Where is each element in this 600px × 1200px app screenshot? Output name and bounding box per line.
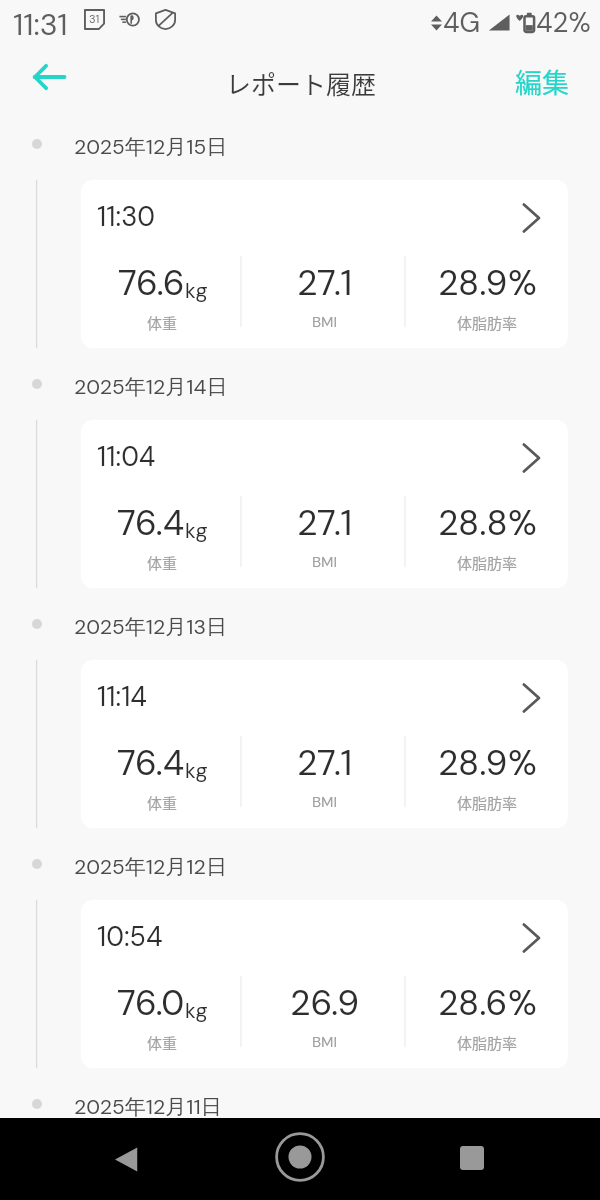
staticText: 28.9 <box>438 260 508 306</box>
staticText: 10:54 <box>97 919 163 954</box>
staticText: 76.6 <box>118 260 185 306</box>
staticText: 体重 <box>147 312 178 334</box>
button[interactable]: Recent apps <box>442 1128 502 1188</box>
staticText: 28.6 <box>438 980 508 1026</box>
staticText: 2025年12月15日 <box>74 133 228 160</box>
staticText: % <box>508 260 537 306</box>
staticText: 76.4 <box>117 500 185 546</box>
button[interactable]: 11:04 <box>81 420 568 588</box>
staticText: 11:30 <box>97 199 155 234</box>
staticText: 体重 <box>147 792 178 814</box>
staticText: BMI <box>312 1032 338 1052</box>
button[interactable]: 11:30 <box>81 180 568 348</box>
staticText: 27.1 <box>297 740 353 786</box>
staticText: BMI <box>312 312 338 332</box>
other: Open detail <box>516 684 544 712</box>
staticText: 2025年12月12日 <box>74 853 227 880</box>
button[interactable]: 10:54 <box>81 900 568 1068</box>
staticText: 体脂肪率 <box>457 1032 518 1054</box>
staticText: 27.1 <box>297 260 353 306</box>
staticText: 28.8 <box>438 500 508 546</box>
staticText: 31 <box>89 12 100 26</box>
staticText: BMI <box>312 792 338 812</box>
staticText: 76.0 <box>117 980 185 1026</box>
staticText: 26.9 <box>290 980 360 1026</box>
button[interactable]: Back <box>22 50 76 104</box>
other: Open detail <box>516 924 544 952</box>
button[interactable]: 11:14 <box>81 660 568 828</box>
staticText: 4G <box>443 5 481 40</box>
staticText: 編集 <box>515 62 569 101</box>
staticText: kg <box>185 757 208 784</box>
staticText: % <box>508 500 537 546</box>
staticText: 2025年12月14日 <box>74 373 228 400</box>
staticText: % <box>508 740 537 786</box>
button[interactable]: 編集 <box>500 54 584 109</box>
staticText: 2025年12月11日 <box>74 1093 222 1120</box>
staticText: BMI <box>312 552 338 572</box>
staticText: 体脂肪率 <box>457 312 518 334</box>
staticText: kg <box>185 517 208 544</box>
button[interactable]: Back <box>96 1129 156 1189</box>
button[interactable]: Home <box>270 1127 330 1187</box>
staticText: kg <box>185 997 208 1024</box>
staticText: 11:04 <box>97 439 156 474</box>
staticText: 28.9 <box>438 740 508 786</box>
staticText: 76.4 <box>117 740 185 786</box>
staticText: 2025年12月13日 <box>74 613 228 640</box>
staticText: 11:31 <box>13 5 68 44</box>
other: Open detail <box>516 204 544 232</box>
staticText: 体重 <box>147 1032 178 1054</box>
other: Open detail <box>516 444 544 472</box>
staticText: 体重 <box>147 552 178 574</box>
staticText: 体脂肪率 <box>457 792 518 814</box>
staticText: 体脂肪率 <box>457 552 518 574</box>
staticText: 11:14 <box>97 679 147 714</box>
staticText: kg <box>185 277 208 304</box>
staticText: 27.1 <box>297 500 353 546</box>
staticText: 42% <box>536 5 591 40</box>
staticText: レポート履歴 <box>226 65 377 101</box>
staticText: % <box>508 980 537 1026</box>
